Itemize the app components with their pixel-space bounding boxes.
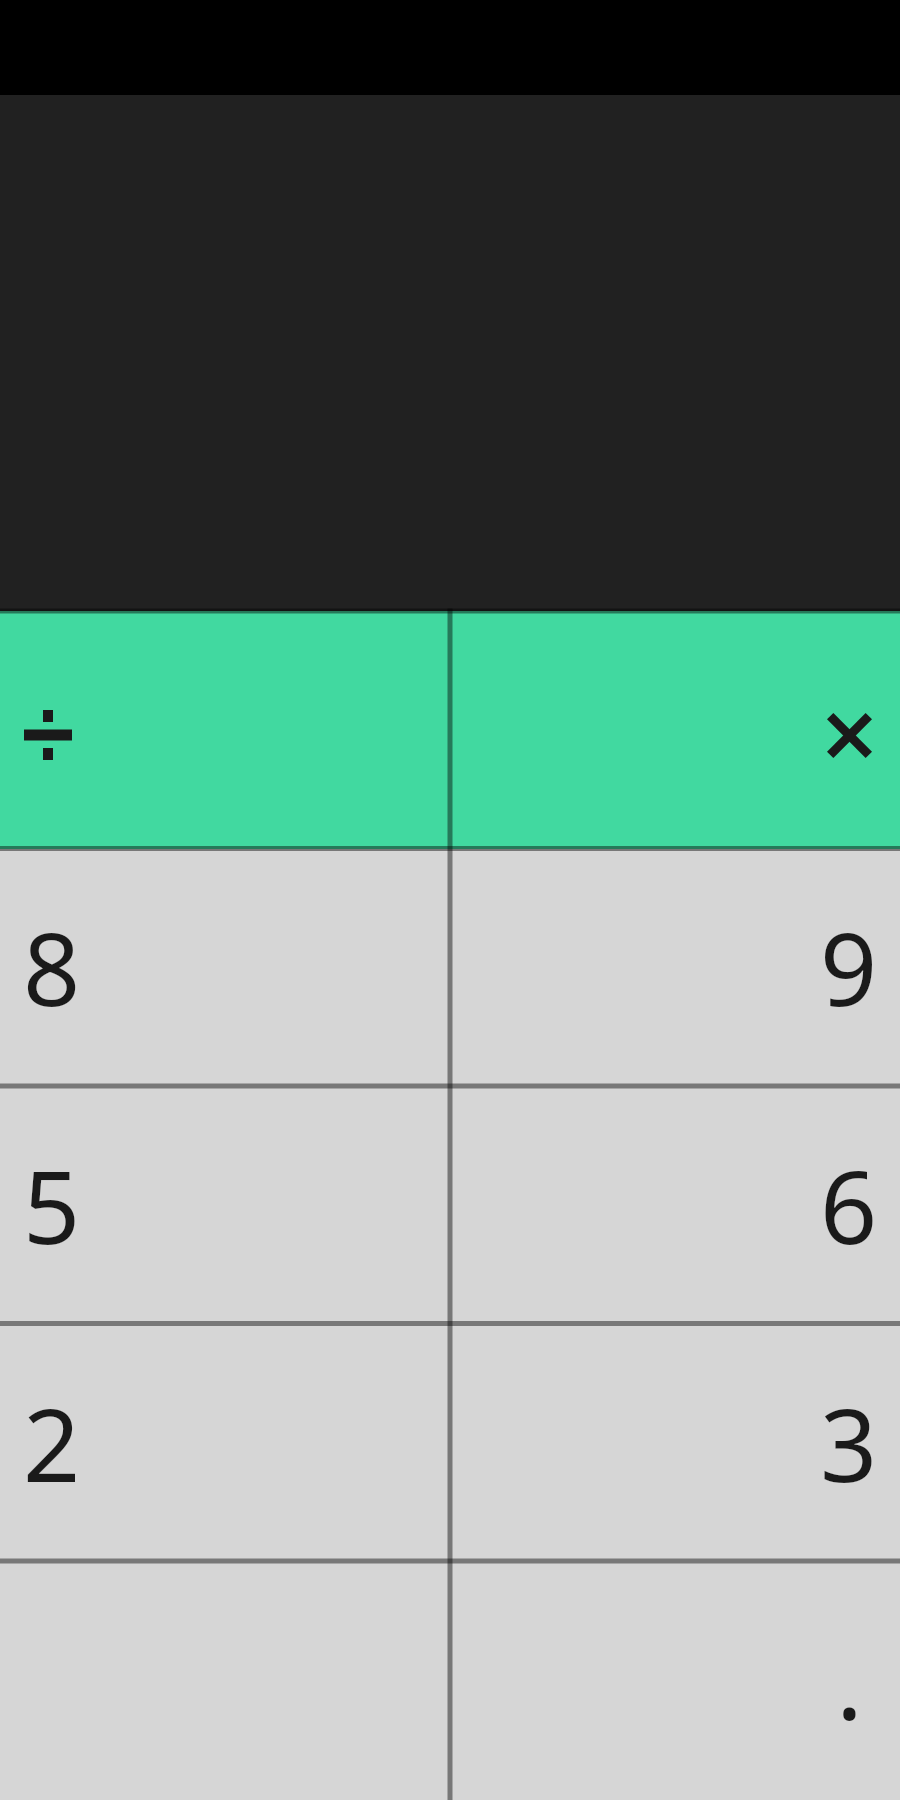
staticText: . <box>836 1613 863 1749</box>
staticText: 2 <box>23 1375 81 1511</box>
button[interactable]: Key <box>0 1563 450 1800</box>
button[interactable]: . <box>450 1563 900 1800</box>
button[interactable]: Divide <box>0 611 450 849</box>
button[interactable]: 8 <box>0 849 450 1087</box>
button[interactable]: 5 <box>0 1087 450 1325</box>
staticText: 5 <box>23 1137 81 1273</box>
staticText: 9 <box>820 899 878 1035</box>
button[interactable]: 3 <box>450 1325 900 1563</box>
button[interactable]: Multiply <box>450 611 900 849</box>
staticText: 3 <box>820 1375 878 1511</box>
button[interactable]: 6 <box>450 1087 900 1325</box>
button[interactable]: 9 <box>450 849 900 1087</box>
button[interactable]: 2 <box>0 1325 450 1563</box>
staticText: 6 <box>820 1137 878 1273</box>
staticText: 8 <box>23 899 81 1035</box>
